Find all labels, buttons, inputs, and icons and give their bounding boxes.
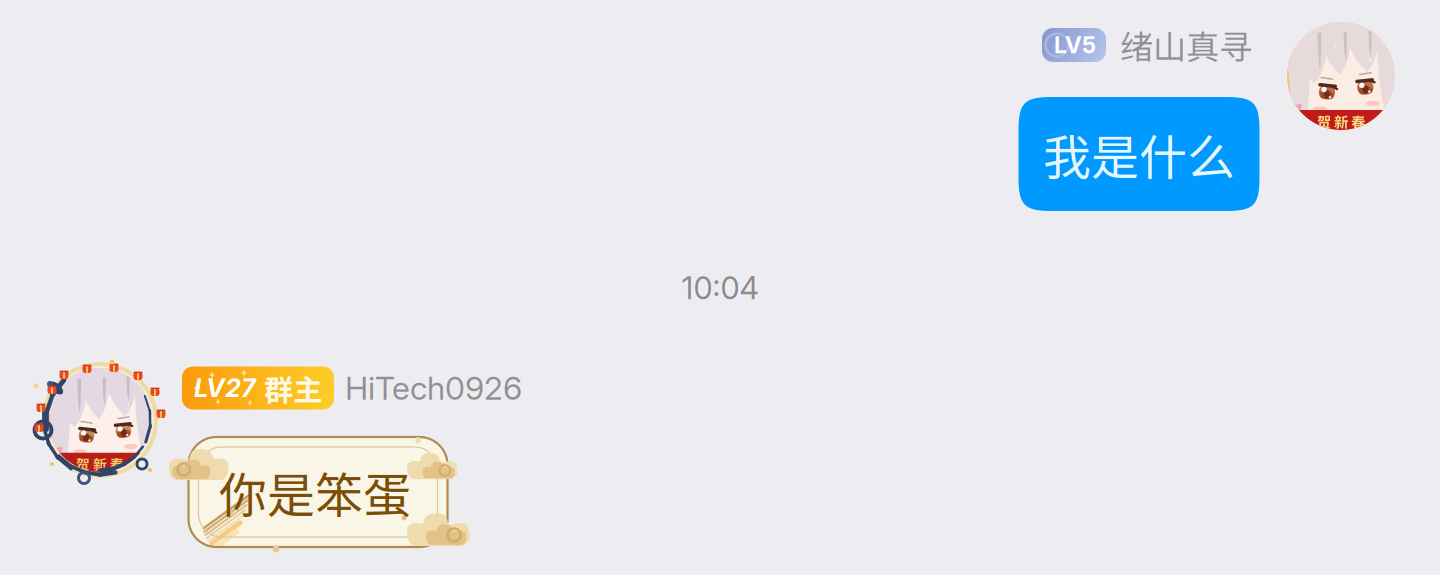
button[interactable]: 你是笨蛋 [173,422,463,562]
staticText: 10:04 [681,269,758,306]
button[interactable]: HiTech0926 avatar [34,354,166,486]
staticText: 你是笨蛋 [219,457,411,527]
button[interactable]: LV5 [1042,21,1252,69]
button[interactable]: LV27 [182,366,522,409]
button[interactable]: 我是什么 [1018,97,1259,211]
staticText: 贺 新 春 [1317,111,1365,132]
staticText: HiTech0926 [345,369,522,407]
staticText: 绪山真寻 [1120,21,1252,69]
staticText: 群主 [264,367,322,409]
staticText: 我是什么 [1043,119,1235,189]
staticText: LV5 [1054,31,1096,59]
staticText: 贺 新 春 [76,454,124,474]
button[interactable]: 绪山真寻 avatar [1287,22,1395,130]
staticText: LV27 [194,373,256,403]
